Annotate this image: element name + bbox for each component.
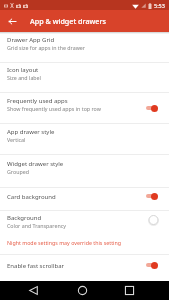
staticText: App drawer style: [7, 128, 55, 136]
button[interactable]: Card background: [0, 188, 169, 210]
button[interactable]: Recents: [119, 281, 140, 300]
button[interactable]: Toggle: [146, 259, 163, 271]
button[interactable]: Back: [23, 281, 44, 300]
staticText: Drawer App Grid: [7, 36, 55, 44]
button[interactable]: App drawer style: [0, 124, 169, 154]
button[interactable]: Icon layout: [0, 63, 169, 92]
staticText: App & widget drawers: [30, 16, 106, 26]
staticText: Icon layout: [7, 66, 39, 74]
staticText: Widget drawer style: [7, 160, 64, 168]
button[interactable]: Toggle: [146, 102, 163, 114]
button[interactable]: Enable fast scrollbar: [0, 255, 169, 280]
staticText: Card background: [7, 193, 146, 201]
staticText: Enable fast scrollbar: [7, 262, 146, 270]
staticText: 5:53: [154, 2, 165, 9]
staticText: Night mode settings may override this se…: [7, 239, 122, 246]
button[interactable]: Toggle: [146, 190, 163, 202]
button[interactable]: Home: [72, 281, 93, 300]
button[interactable]: Toggle: [146, 214, 163, 226]
staticText: Color and Transparency: [7, 222, 66, 229]
staticText: Grid size for apps in the drawer: [7, 44, 86, 51]
button[interactable]: Background: [0, 211, 169, 254]
button[interactable]: Widget drawer style: [0, 155, 169, 187]
staticText: Grouped: [7, 168, 29, 175]
staticText: Size and label: [7, 74, 41, 81]
button[interactable]: Back: [3, 12, 22, 31]
button[interactable]: Frequently used apps: [0, 93, 169, 123]
staticText: Frequently used apps: [7, 97, 68, 105]
staticText: Background: [7, 214, 42, 222]
staticText: Show frequently used apps in top row: [7, 105, 101, 112]
staticText: Vertical: [7, 136, 26, 143]
button[interactable]: Drawer App Grid: [0, 32, 169, 62]
